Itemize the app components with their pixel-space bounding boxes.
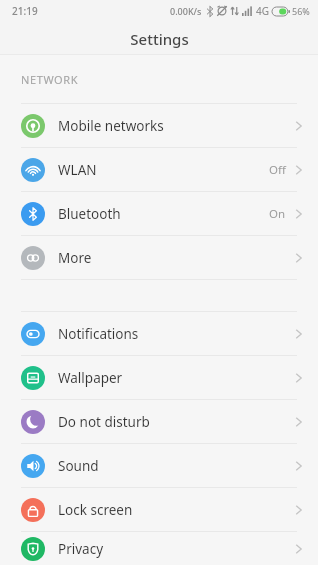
- staticText: Lock screen: [58, 501, 133, 519]
- other: Mobile networks: [21, 114, 45, 138]
- staticText: Sound: [58, 457, 99, 475]
- staticText: 56%: [292, 5, 310, 17]
- staticText: 21:19: [12, 4, 38, 18]
- other: More: [21, 246, 45, 270]
- button[interactable]: Lock screen: [0, 488, 318, 531]
- other: WLAN: [21, 158, 45, 182]
- staticText: Privacy: [58, 540, 104, 558]
- other: Notifications: [21, 322, 45, 346]
- staticText: More: [58, 249, 92, 267]
- other: Wallpaper: [21, 366, 45, 390]
- button[interactable]: WLAN: [0, 148, 318, 191]
- staticText: NETWORK: [21, 72, 79, 87]
- button[interactable]: Mobile networks: [0, 104, 318, 147]
- staticText: 4G: [256, 4, 269, 18]
- button[interactable]: Sound: [0, 444, 318, 487]
- button[interactable]: More: [0, 236, 318, 279]
- button[interactable]: Wallpaper: [0, 356, 318, 399]
- staticText: On: [269, 206, 286, 222]
- staticText: Bluetooth: [58, 205, 121, 223]
- staticText: Off: [269, 162, 286, 178]
- staticText: Mobile networks: [58, 117, 164, 135]
- other: Privacy: [21, 537, 45, 561]
- button[interactable]: Privacy: [0, 532, 318, 565]
- staticText: 0.00K/s: [170, 5, 202, 17]
- button[interactable]: Notifications: [0, 312, 318, 355]
- button[interactable]: Bluetooth: [0, 192, 318, 235]
- other: Do not disturb: [21, 410, 45, 434]
- other: Lock screen: [21, 498, 45, 522]
- staticText: Settings: [130, 29, 189, 49]
- staticText: Wallpaper: [58, 369, 123, 387]
- staticText: WLAN: [58, 161, 97, 179]
- staticText: Notifications: [58, 325, 139, 343]
- staticText: Do not disturb: [58, 413, 150, 431]
- other: Bluetooth: [21, 202, 45, 226]
- other: Sound: [21, 454, 45, 478]
- button[interactable]: Do not disturb: [0, 400, 318, 443]
